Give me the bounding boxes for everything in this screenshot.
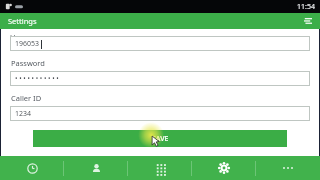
button[interactable]: More [256, 156, 320, 180]
button[interactable]: SAVE [33, 130, 287, 147]
button[interactable]: Keypad [128, 156, 192, 180]
button[interactable]: Contacts [64, 156, 128, 180]
staticText: 1234 [15, 109, 32, 119]
button[interactable]: Menu [302, 15, 314, 27]
button[interactable]: 196053 [10, 36, 310, 51]
button[interactable]: • • • • • • • • • • • [10, 71, 310, 86]
staticText: 196053 [15, 39, 40, 49]
staticText: Username [10, 32, 47, 36]
staticText: Password [11, 58, 45, 68]
button[interactable]: Settings [192, 156, 256, 180]
staticText: SAVE [152, 134, 169, 144]
staticText: Caller ID [11, 93, 42, 103]
staticText: 11:54 [297, 2, 315, 12]
button[interactable]: 1234 [10, 106, 310, 121]
staticText: Settings [8, 16, 37, 26]
button[interactable]: History [0, 156, 64, 180]
staticText: • • • • • • • • • • • [15, 74, 59, 83]
